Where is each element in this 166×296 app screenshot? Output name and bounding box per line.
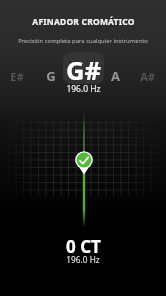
staticText: A#	[140, 69, 155, 84]
staticText: AFINADOR CROMÁTICO	[32, 16, 135, 28]
staticText: G	[46, 67, 56, 85]
staticText: Precisión completa para cualquier instru…	[18, 37, 148, 45]
staticText: 0 CT	[66, 235, 101, 258]
staticText: E#	[10, 69, 24, 84]
staticText: 196.0 Hz	[66, 254, 100, 265]
staticText: 196.0 Hz	[66, 83, 101, 95]
staticText: A	[111, 67, 120, 85]
staticText: G#	[66, 53, 101, 88]
